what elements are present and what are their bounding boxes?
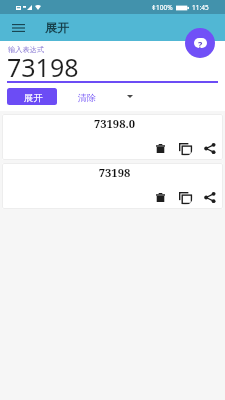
button[interactable]: Menu [7,14,29,41]
staticText: 展开 [45,20,69,35]
button[interactable]: 清除 [66,89,108,105]
button[interactable]: Share [202,189,218,205]
staticText: 清除 [78,92,96,103]
staticText: ? [198,38,203,48]
staticText: 73198.0 [4,116,223,131]
staticText: 73198 [7,50,79,84]
button[interactable]: 73198.0 [2,114,223,160]
button[interactable]: Show history [120,88,139,104]
staticText: 100% [156,3,173,12]
button[interactable]: Help [185,28,215,58]
button[interactable]: Copy [177,189,193,205]
staticText: 展开 [24,92,43,104]
staticText: 11:45 [192,3,209,12]
button[interactable]: Share [202,140,218,156]
button[interactable]: 73198 [2,163,223,209]
button[interactable]: 展开 [7,88,57,105]
button[interactable]: Delete [152,189,168,205]
staticText: 73198 [4,165,223,180]
staticText: 输入表达式 [8,45,44,54]
button[interactable]: Copy [177,140,193,156]
button[interactable]: Delete [152,140,168,156]
